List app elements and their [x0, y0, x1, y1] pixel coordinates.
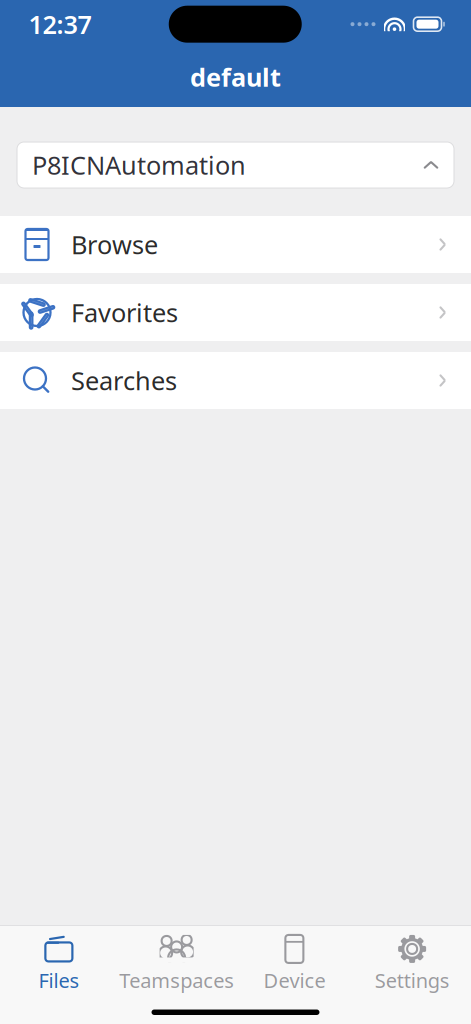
staticText: Settings [375, 967, 450, 993]
staticText: default [190, 60, 281, 94]
staticText: P8ICNAutomation [32, 148, 246, 182]
button[interactable]: Settings [353, 926, 471, 999]
button[interactable]: Searches [0, 352, 471, 409]
button[interactable]: Favorites [0, 284, 471, 341]
staticText: Device [263, 967, 325, 993]
staticText: Teamspaces [119, 967, 234, 993]
staticText: Files [38, 967, 79, 993]
staticText: Searches [71, 364, 177, 397]
button[interactable]: P8ICNAutomation [0, 142, 471, 188]
button[interactable]: Files [0, 926, 118, 999]
staticText: Favorites [71, 296, 178, 329]
staticText: Browse [71, 228, 158, 261]
button[interactable]: Device [235, 926, 353, 999]
staticText: 12:37 [28, 7, 91, 41]
button[interactable]: Browse [0, 216, 471, 273]
button[interactable]: Teamspaces [118, 926, 236, 999]
